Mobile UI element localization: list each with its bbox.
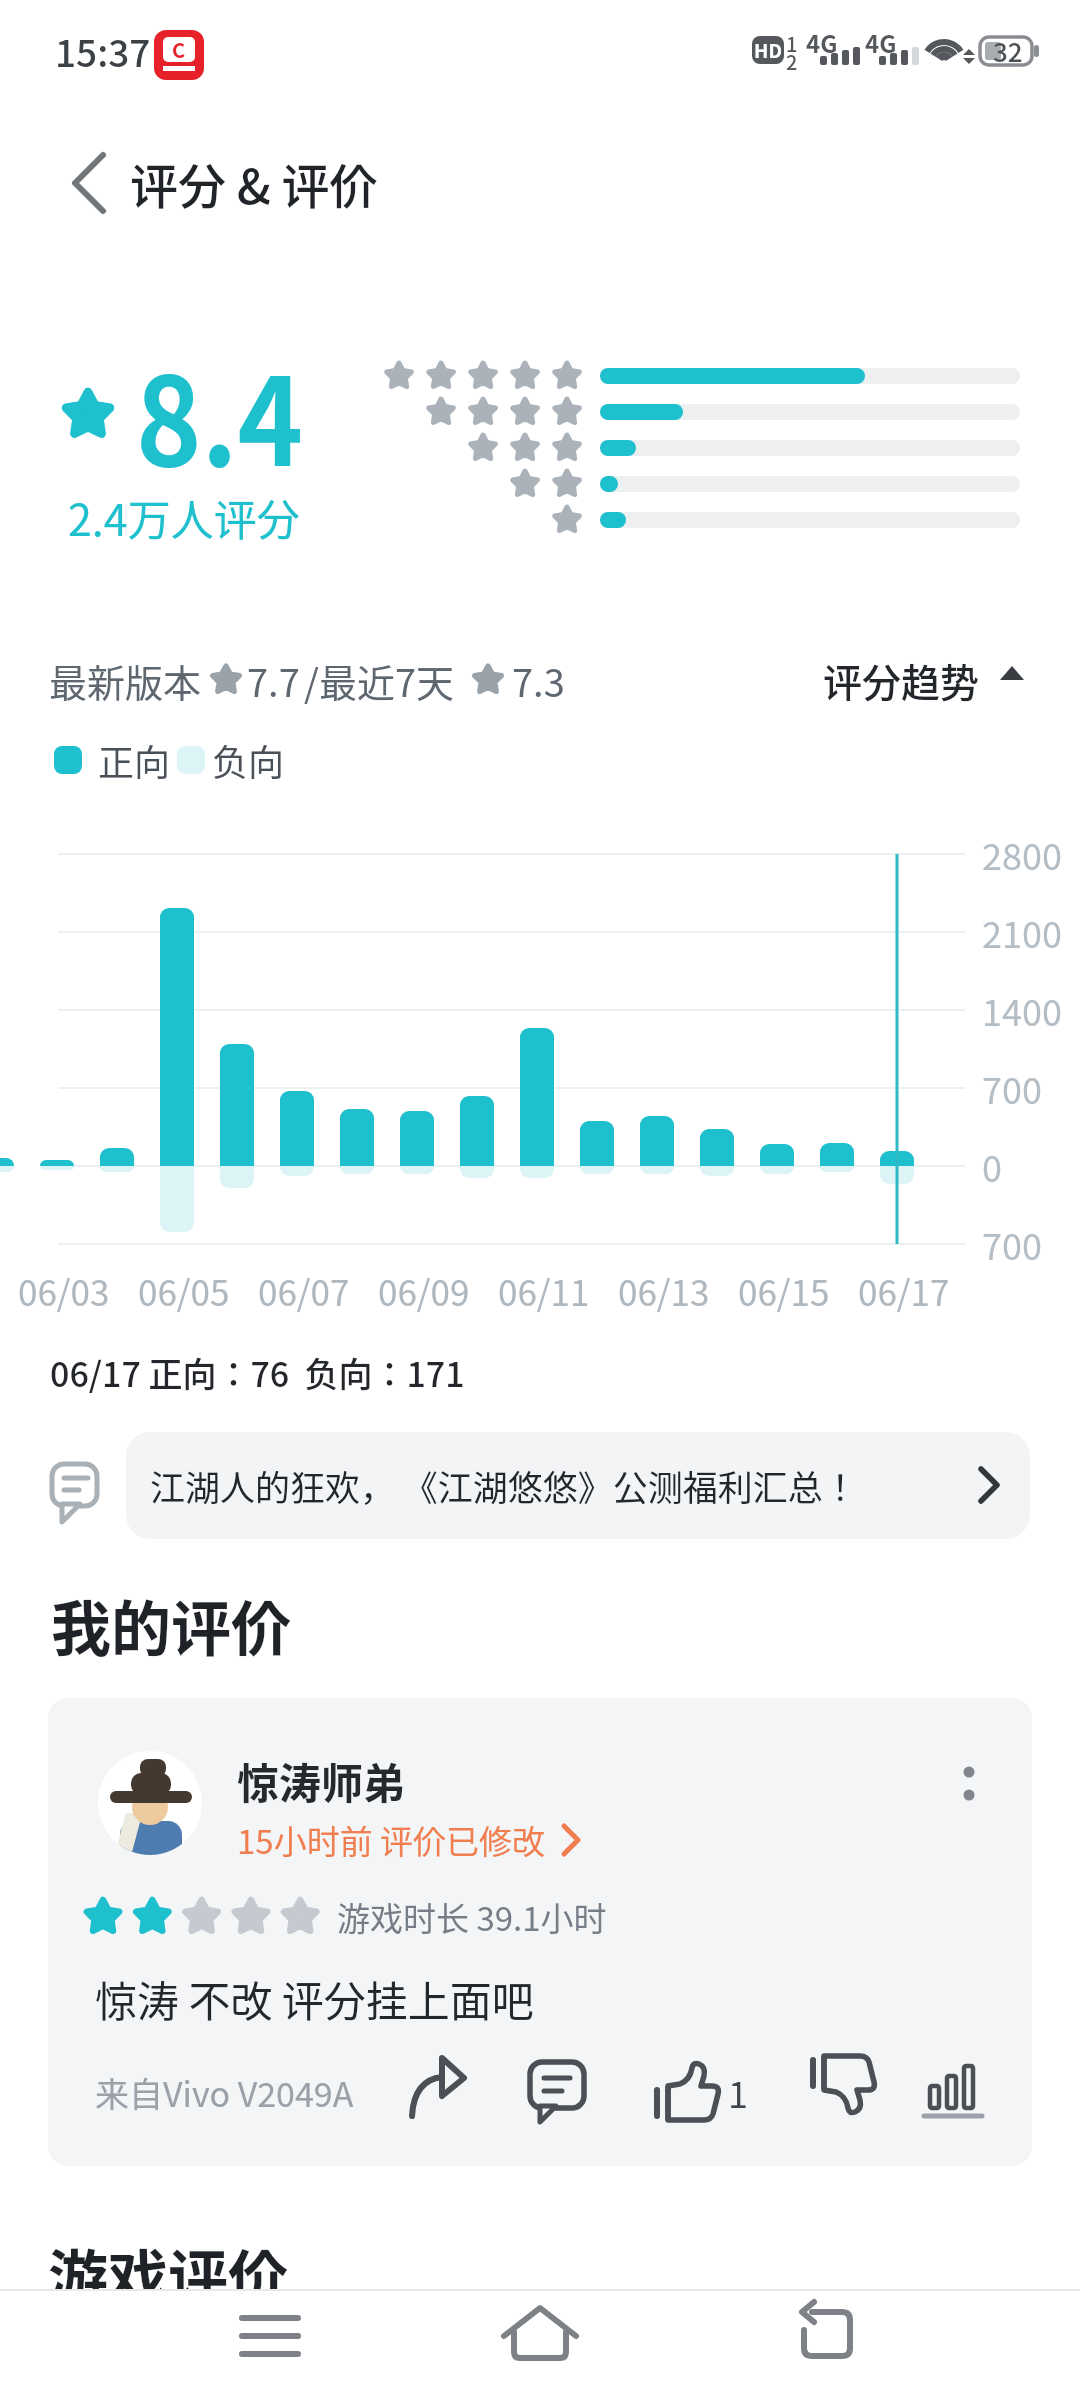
- staticText: 06/07: [258, 1265, 350, 1316]
- staticText: 2.4万人评分: [68, 486, 300, 548]
- staticText: 15小时前 评价已修改: [237, 1816, 546, 1864]
- staticText: 700: [982, 1218, 1042, 1270]
- staticText: 惊涛师弟: [237, 1750, 406, 1811]
- button[interactable]: [790, 2300, 870, 2370]
- staticText: 7.3: [512, 653, 565, 708]
- staticText: 700: [982, 1062, 1042, 1114]
- staticText: 15:37: [55, 24, 151, 78]
- staticText: 8.4: [136, 324, 303, 501]
- staticText: 4G: [865, 25, 897, 60]
- staticText: 0: [982, 1140, 1002, 1192]
- staticText: 06/03: [18, 1265, 110, 1316]
- staticText: 06/13: [618, 1265, 710, 1316]
- button[interactable]: 1: [650, 2056, 760, 2128]
- button[interactable]: [500, 2296, 580, 2372]
- staticText: 1: [728, 2066, 748, 2118]
- staticText: 负向: [212, 734, 285, 786]
- staticText: 1400: [982, 984, 1062, 1036]
- button[interactable]: [922, 2058, 986, 2126]
- button[interactable]: [806, 2056, 878, 2128]
- staticText: 正向: [98, 734, 171, 786]
- staticText: 1: [786, 29, 798, 58]
- staticText: 06/05: [138, 1265, 230, 1316]
- staticText: 最新版本: [49, 653, 202, 708]
- staticText: 评分趋势: [823, 652, 980, 708]
- button[interactable]: [230, 2300, 310, 2370]
- staticText: 惊涛 不改 评分挂上面吧: [95, 1968, 534, 2029]
- staticText: 06/17: [858, 1265, 950, 1316]
- staticText: 游戏评价: [48, 2230, 288, 2289]
- staticText: 32: [993, 32, 1023, 70]
- staticText: 2800: [982, 828, 1062, 880]
- staticText: HD: [754, 36, 782, 64]
- staticText: 06/09: [378, 1265, 470, 1316]
- button[interactable]: [820, 655, 1040, 710]
- staticText: 7.7: [247, 653, 300, 708]
- staticText: /最近7天: [304, 653, 454, 708]
- button[interactable]: 江湖人的狂欢， 《江湖悠悠》公测福利汇总！: [126, 1432, 1030, 1539]
- staticText: 来自Vivo V2049A: [95, 2068, 354, 2117]
- staticText: 江湖人的狂欢， 《江湖悠悠》公测福利汇总！: [150, 1460, 858, 1511]
- staticText: C: [172, 35, 186, 64]
- staticText: 我的评价: [51, 1581, 291, 1668]
- button[interactable]: [524, 2058, 592, 2126]
- staticText: 06/11: [498, 1265, 590, 1316]
- staticText: 评分 & 评价: [130, 148, 378, 218]
- button[interactable]: [60, 155, 120, 215]
- staticText: 4G: [806, 25, 838, 60]
- staticText: 06/15: [738, 1265, 830, 1316]
- staticText: 2100: [982, 906, 1062, 958]
- button[interactable]: [402, 2056, 474, 2128]
- button[interactable]: [48, 1698, 1032, 2166]
- staticText: 2: [786, 47, 798, 76]
- staticText: 游戏时长 39.1小时: [337, 1893, 607, 1941]
- staticText: 06/17 正向：76 负向：171: [50, 1348, 465, 1397]
